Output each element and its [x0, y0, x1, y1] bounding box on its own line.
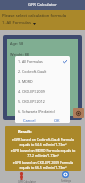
staticText: eGFR based on Cockroft-Gault Formula	[5, 137, 81, 142]
button[interactable]: 3. MDRD	[15, 76, 70, 86]
button[interactable]: Information	[73, 108, 84, 118]
staticText: eGFR based on CKD-EPI 2009 Formula	[5, 160, 81, 165]
staticText: 3. MDRD	[18, 79, 33, 84]
staticText: 77.2 ml/min/1.73m²	[5, 153, 81, 158]
staticText: OK	[54, 118, 60, 123]
staticText: 2. Cockroft-Gault	[18, 69, 47, 74]
button[interactable]: 5. CKD-EPI 2012	[15, 96, 70, 106]
staticText: Age: 58	[10, 41, 24, 46]
button[interactable]: Cancel	[22, 117, 36, 123]
staticText: equals to 66.5 ml/min/1.73m²	[5, 165, 81, 170]
button[interactable]: 1. All Formulas	[2, 20, 36, 26]
staticText: 5. CKD-EPI 2012	[18, 99, 45, 104]
staticText: 1. All Formulas	[18, 59, 43, 64]
button[interactable]: 1. All Formulas	[15, 56, 70, 66]
staticText: Result:	[18, 129, 32, 134]
button[interactable]: 4. CKD-EPI 2009	[15, 86, 70, 96]
button[interactable]: Install	[62, 171, 69, 178]
staticText: 6. Schwartz (Pediatric)	[18, 109, 56, 114]
staticText: Settings	[61, 179, 71, 183]
staticText: eGFR based on MDRD Formula equals to	[5, 148, 81, 153]
staticText: 4. CKD-EPI 2009	[18, 89, 45, 94]
button[interactable]: 2. Cockroft-Gault	[15, 66, 70, 76]
staticText: equals to 54.6 ml/min/1.73m²	[5, 142, 81, 147]
staticText: Please select calculation formula	[2, 13, 67, 19]
staticText: GFR Calculator	[28, 2, 57, 8]
button[interactable]: GFR Calculator	[0, 0, 85, 10]
staticText: Weight: 88	[10, 52, 29, 57]
staticText: GFR Calculator	[18, 180, 36, 183]
staticText: Cancel	[23, 118, 36, 123]
staticText: 1. All Formulas	[2, 20, 31, 26]
button[interactable]: 6. Schwartz (Pediatric)	[15, 106, 70, 116]
button[interactable]: OK	[51, 117, 63, 123]
